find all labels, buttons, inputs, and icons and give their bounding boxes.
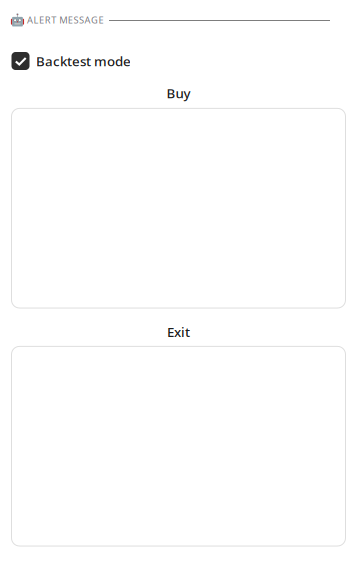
staticText: ALERT MESSAGE [27, 14, 104, 26]
staticText: Backtest mode [36, 52, 131, 70]
staticText: Exit [167, 323, 190, 341]
button[interactable]: Backtest mode [11, 50, 131, 72]
staticText: 🤖 [10, 13, 25, 27]
staticText: Buy [166, 84, 190, 102]
